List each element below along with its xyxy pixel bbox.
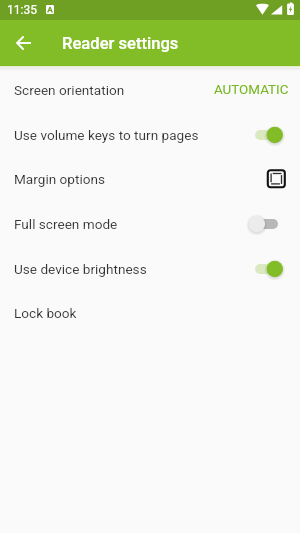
button[interactable]: Full screen mode: [0, 201, 300, 246]
staticText: Screen orientation: [14, 82, 125, 98]
staticText: Margin options: [14, 171, 105, 187]
staticText: Use device brightness: [14, 261, 147, 277]
button[interactable]: Lock book: [0, 290, 300, 335]
button[interactable]: Use volume keys to turn pages: [0, 112, 300, 157]
staticText: Lock book: [14, 305, 77, 321]
button[interactable]: Margin options: [0, 156, 300, 201]
button[interactable]: Screen orientation: [0, 67, 300, 112]
staticText: Full screen mode: [14, 216, 118, 232]
staticText: Use volume keys to turn pages: [14, 127, 199, 143]
button[interactable]: Back: [8, 28, 38, 58]
button[interactable]: Use device brightness: [0, 246, 300, 291]
staticText: AUTOMATIC: [214, 82, 289, 98]
staticText: 11:35: [7, 3, 37, 17]
staticText: Reader settings: [62, 34, 179, 53]
